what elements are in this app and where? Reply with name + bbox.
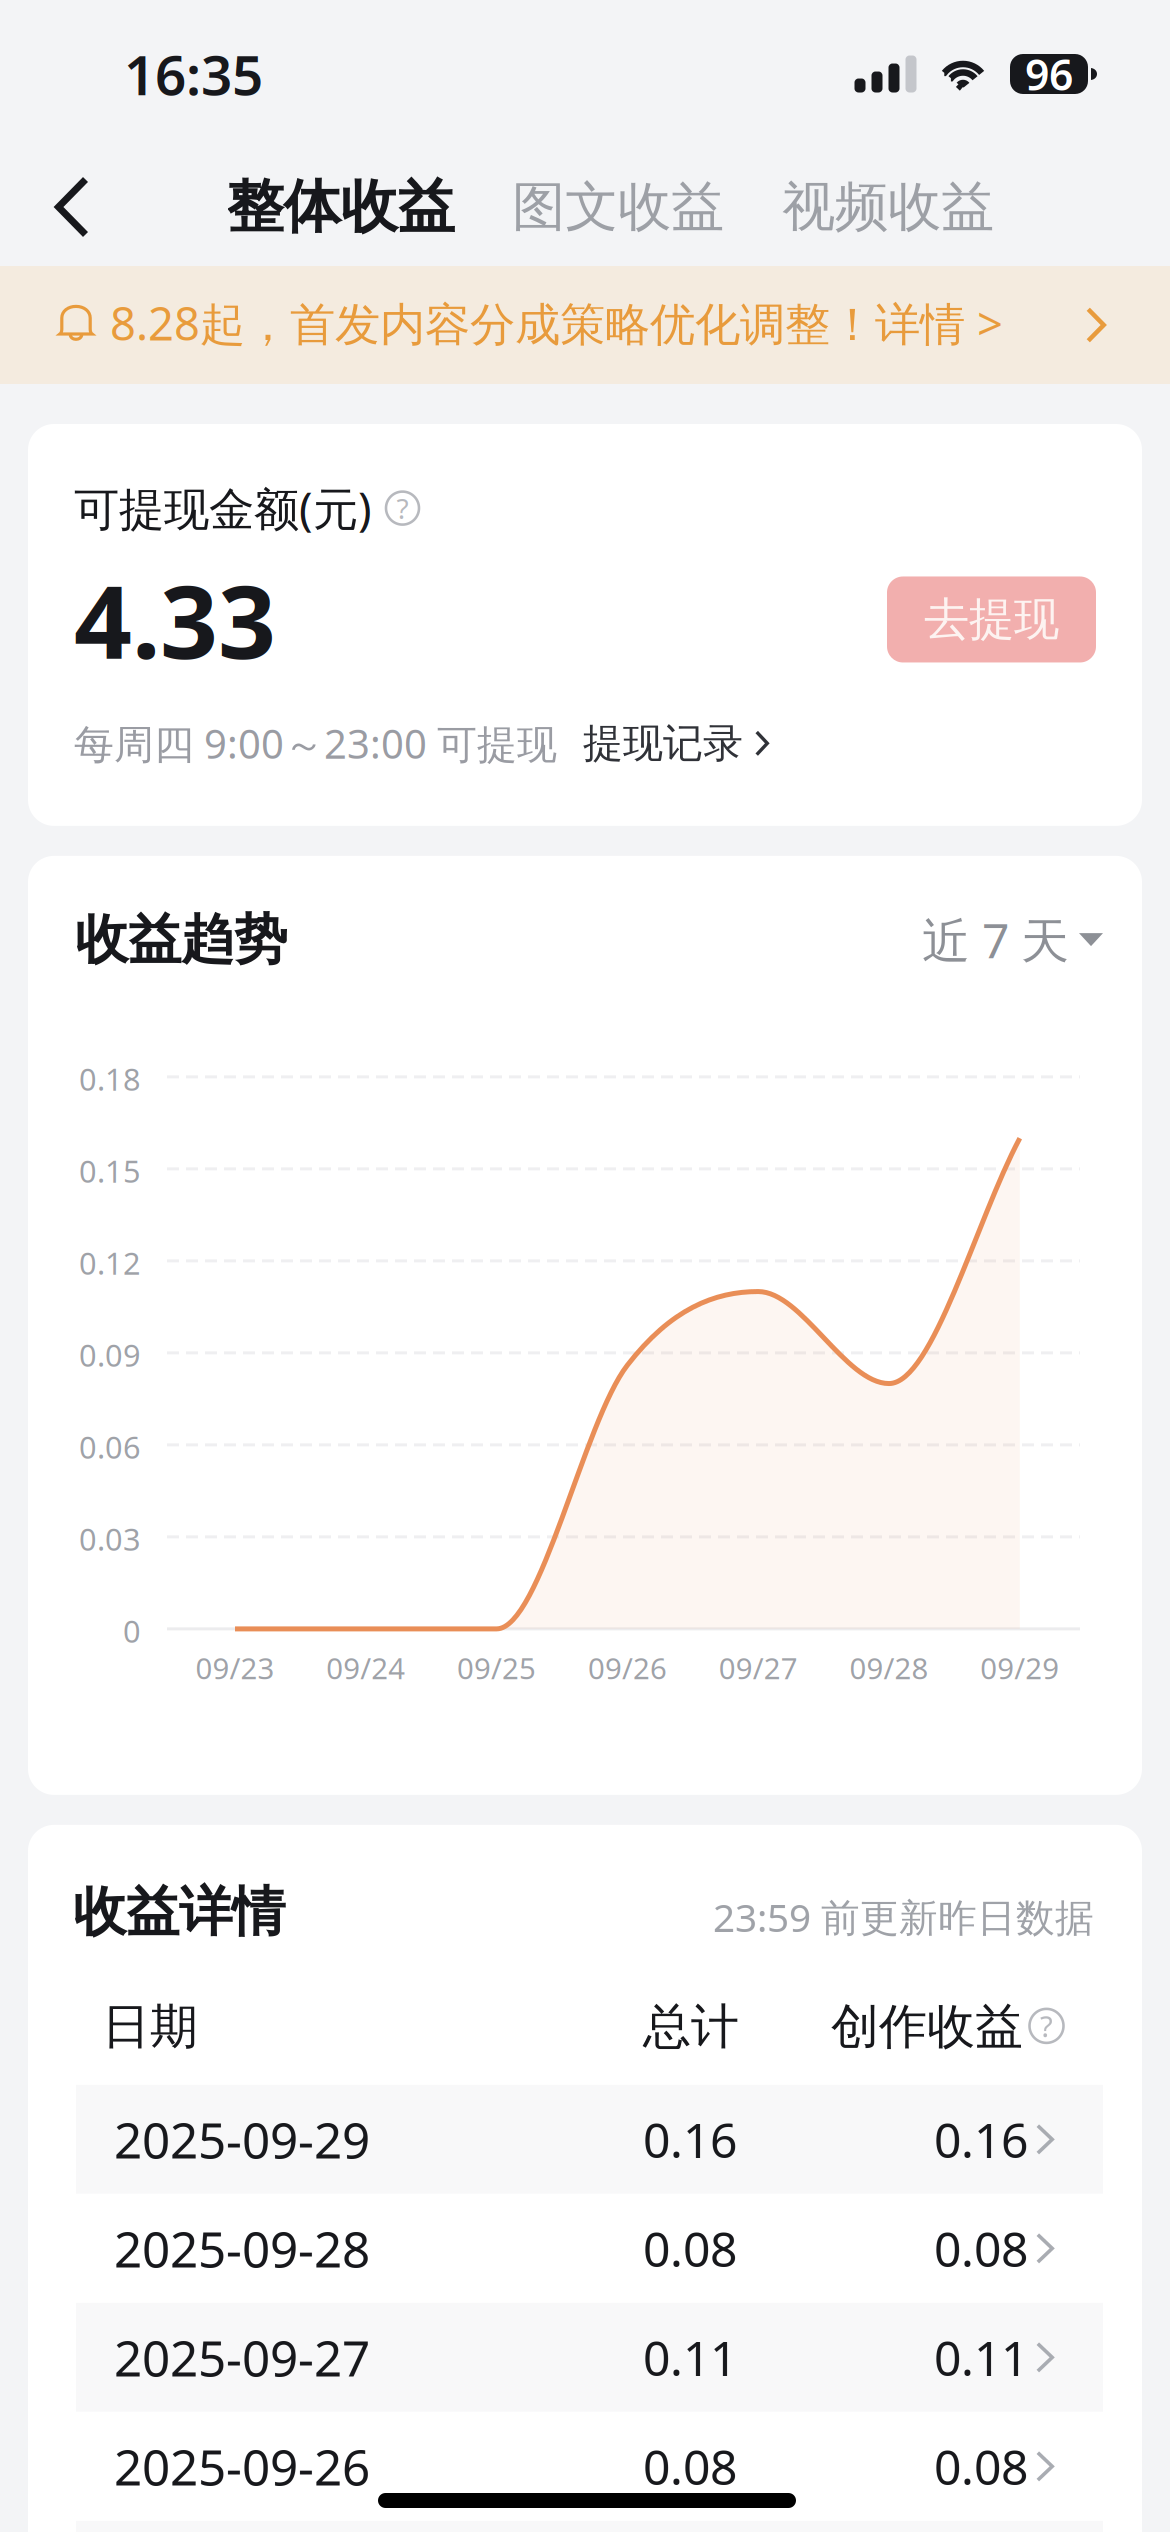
staticText: 09/24 [326,1648,405,1687]
staticText: ? [396,489,408,527]
staticText: 0.06 [79,1426,141,1467]
button[interactable]: 返回 [20,148,124,266]
staticText: 0.08 [643,2216,737,2280]
staticText: 去提现 [924,592,1059,647]
button[interactable]: 2025-09-28 [76,2194,1103,2303]
staticText: 0.12 [79,1242,141,1283]
staticText: ? [1040,2006,1053,2045]
staticText: 收益趋势 [75,907,287,972]
staticText: 0.08 [934,2216,1028,2280]
staticText: 提现记录 [583,719,743,768]
button[interactable]: 视频收益 [768,148,1008,266]
button[interactable]: 2025-09-26 [76,2412,1103,2521]
staticText: 0.15 [79,1150,141,1191]
staticText: 09/26 [588,1648,667,1687]
staticText: 创作收益 [831,1997,1023,2056]
button[interactable]: 2025-09-27 [76,2303,1103,2412]
staticText: 0.09 [79,1334,141,1375]
staticText: 0.03 [79,1518,141,1559]
staticText: 0.16 [934,2107,1028,2171]
staticText: 2025-09-26 [114,2434,370,2499]
staticText: 09/25 [457,1648,536,1687]
staticText: 4.33 [74,552,276,687]
staticText: 09/27 [719,1648,798,1687]
staticText: 视频收益 [782,174,994,240]
staticText: 近 7 天 [922,908,1069,971]
staticText: 2025-09-27 [114,2325,370,2390]
staticText: 09/29 [980,1648,1059,1687]
staticText: 可提现金额(元) [74,478,372,538]
staticText: 0 [123,1610,141,1651]
button[interactable]: 提现记录 [583,719,769,768]
staticText: 每周四 9:00～23:00 可提现 [74,717,557,770]
button[interactable]: 图文收益 [498,148,738,266]
button[interactable]: 2025-09-29 [76,2085,1103,2194]
staticText: 日期 [102,1997,198,2056]
staticText: 2025-09-28 [114,2216,370,2281]
button[interactable]: 创作收益说明 [1028,2000,1065,2052]
staticText: 0.08 [643,2434,737,2498]
staticText: 2025-09-29 [114,2107,370,2172]
staticText: 09/23 [195,1648,274,1687]
button[interactable]: 可提现金额说明 [386,492,419,525]
staticText: 0.11 [934,2325,1028,2389]
staticText: 图文收益 [512,174,724,240]
button[interactable]: 近 7 天 [922,908,1103,971]
staticText: 8.28起，首发内容分成策略优化调整！详情 > [110,293,1003,353]
button[interactable]: 去提现 [887,576,1096,662]
staticText: 09/28 [849,1648,928,1687]
staticText: 0.16 [643,2107,737,2171]
staticText: 0.11 [643,2325,737,2389]
staticText: 收益详情 [73,1879,285,1945]
staticText: 0.08 [934,2434,1028,2498]
button[interactable]: 8.28起，首发内容分成策略优化调整！详情 > [0,266,1170,384]
staticText: 16:35 [124,38,263,110]
button[interactable]: 整体收益 [213,148,468,266]
staticText: 23:59 前更新昨日数据 [713,1891,1094,1942]
staticText: 96 [1025,46,1073,102]
staticText: 整体收益 [226,172,454,242]
staticText: 总计 [643,1997,739,2056]
staticText: 0.18 [79,1058,141,1099]
